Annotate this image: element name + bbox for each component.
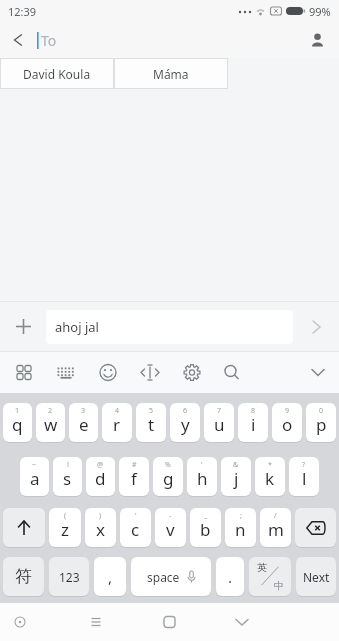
staticText: t xyxy=(148,413,155,436)
button[interactable]: ' xyxy=(120,508,151,547)
staticText: 6 xyxy=(183,406,188,416)
button[interactable]: _ xyxy=(190,508,221,547)
staticText: 1 xyxy=(15,406,20,416)
button[interactable] xyxy=(0,22,36,58)
staticText: . xyxy=(228,567,233,587)
button[interactable]: ! xyxy=(53,457,82,496)
staticText: w xyxy=(44,413,58,436)
staticText: ' xyxy=(201,460,203,470)
staticText: a xyxy=(30,467,40,490)
staticText: ' xyxy=(135,511,137,521)
button[interactable] xyxy=(76,603,116,641)
staticText: 英 xyxy=(257,561,267,574)
button[interactable]: Máma xyxy=(114,58,228,89)
button[interactable] xyxy=(295,22,339,58)
staticText: / xyxy=(274,511,277,521)
button[interactable] xyxy=(0,352,42,393)
button[interactable] xyxy=(42,352,84,393)
staticText: 0 xyxy=(319,406,324,416)
staticText: 12:39 xyxy=(8,4,37,19)
button[interactable] xyxy=(126,352,168,393)
button[interactable]: David Koula xyxy=(0,58,114,89)
staticText: 123 xyxy=(59,569,80,585)
button[interactable]: * xyxy=(255,457,285,496)
button[interactable]: 8 xyxy=(238,403,268,442)
button[interactable]: ~ xyxy=(20,457,49,496)
staticText: c xyxy=(131,518,140,541)
staticText: _ xyxy=(204,511,208,521)
staticText: g xyxy=(163,467,174,490)
button[interactable]: ahoj jal xyxy=(46,310,293,344)
button[interactable]: & xyxy=(221,457,251,496)
staticText: m xyxy=(268,518,284,541)
staticText: & xyxy=(233,460,239,470)
button[interactable]: , xyxy=(94,557,126,596)
staticText: v xyxy=(166,518,175,541)
staticText: r xyxy=(113,413,121,436)
button[interactable]: @ xyxy=(86,457,115,496)
staticText: David Koula xyxy=(23,66,91,82)
staticText: 3 xyxy=(81,406,86,416)
staticText: f xyxy=(131,467,137,490)
button[interactable] xyxy=(0,302,46,351)
staticText: ( xyxy=(64,511,67,521)
button[interactable] xyxy=(0,603,40,641)
button[interactable] xyxy=(149,603,189,641)
button[interactable] xyxy=(168,352,210,393)
button[interactable]: % xyxy=(153,457,183,496)
staticText: Next xyxy=(303,569,330,585)
button[interactable]: 2 xyxy=(36,403,65,442)
button[interactable]: 0 xyxy=(306,403,336,442)
staticText: - xyxy=(169,511,172,521)
button[interactable]: / xyxy=(260,508,291,547)
button[interactable]: ' xyxy=(187,457,217,496)
staticText: 4 xyxy=(115,406,120,416)
staticText: ! xyxy=(67,460,69,470)
staticText: * xyxy=(268,460,272,470)
staticText: Máma xyxy=(153,66,189,82)
button[interactable]: # xyxy=(119,457,149,496)
button[interactable]: 5 xyxy=(136,403,166,442)
button[interactable]: 6 xyxy=(170,403,200,442)
button[interactable]: ( xyxy=(49,508,81,547)
button[interactable]: 3 xyxy=(69,403,98,442)
button[interactable]: 4 xyxy=(102,403,132,442)
button[interactable]: 7 xyxy=(204,403,234,442)
button[interactable]: 符 xyxy=(3,557,44,596)
button[interactable] xyxy=(84,352,126,393)
staticText: e xyxy=(79,413,89,436)
staticText: To xyxy=(41,31,57,50)
staticText: p xyxy=(316,413,327,436)
button[interactable]: 英 xyxy=(249,557,291,596)
button[interactable]: . xyxy=(216,557,244,596)
button[interactable] xyxy=(295,508,336,547)
button[interactable]: 1 xyxy=(3,403,32,442)
button[interactable]: 123 xyxy=(49,557,89,596)
button[interactable] xyxy=(293,302,339,351)
staticText: ~ xyxy=(32,460,37,470)
staticText: # xyxy=(132,460,137,470)
button[interactable]: - xyxy=(155,508,186,547)
button[interactable]: 9 xyxy=(272,403,302,442)
staticText: y xyxy=(181,413,190,436)
staticText: d xyxy=(95,467,106,490)
staticText: q xyxy=(12,413,23,436)
button[interactable] xyxy=(3,508,45,547)
staticText: ? xyxy=(302,460,306,470)
staticText: o xyxy=(282,413,293,436)
staticText: 5 xyxy=(149,406,154,416)
button[interactable]: Next xyxy=(296,557,336,596)
staticText: space xyxy=(147,569,180,585)
button[interactable]: ? xyxy=(289,457,319,496)
button[interactable] xyxy=(222,603,262,641)
staticText: , xyxy=(108,567,113,587)
staticText: ahoj jal xyxy=(55,318,99,336)
button[interactable]: space xyxy=(131,557,211,596)
staticText: 8 xyxy=(251,406,256,416)
staticText: 符 xyxy=(15,566,32,587)
button[interactable]: ; xyxy=(225,508,256,547)
button[interactable] xyxy=(210,352,252,393)
button[interactable]: ) xyxy=(85,508,116,547)
staticText: 中 xyxy=(274,579,284,592)
button[interactable] xyxy=(297,352,339,393)
